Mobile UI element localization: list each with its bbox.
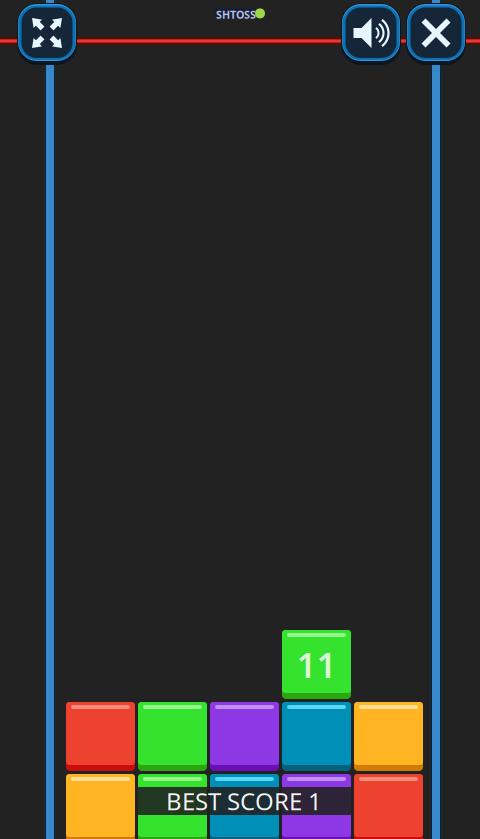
staticText: 11 [296,641,336,687]
button[interactable]: Close [406,3,466,65]
button[interactable]: Sound [341,3,401,65]
staticText: SHTOSS [216,7,256,22]
staticText: BEST SCORE 1 [166,785,322,817]
button[interactable]: Fullscreen [17,3,77,65]
